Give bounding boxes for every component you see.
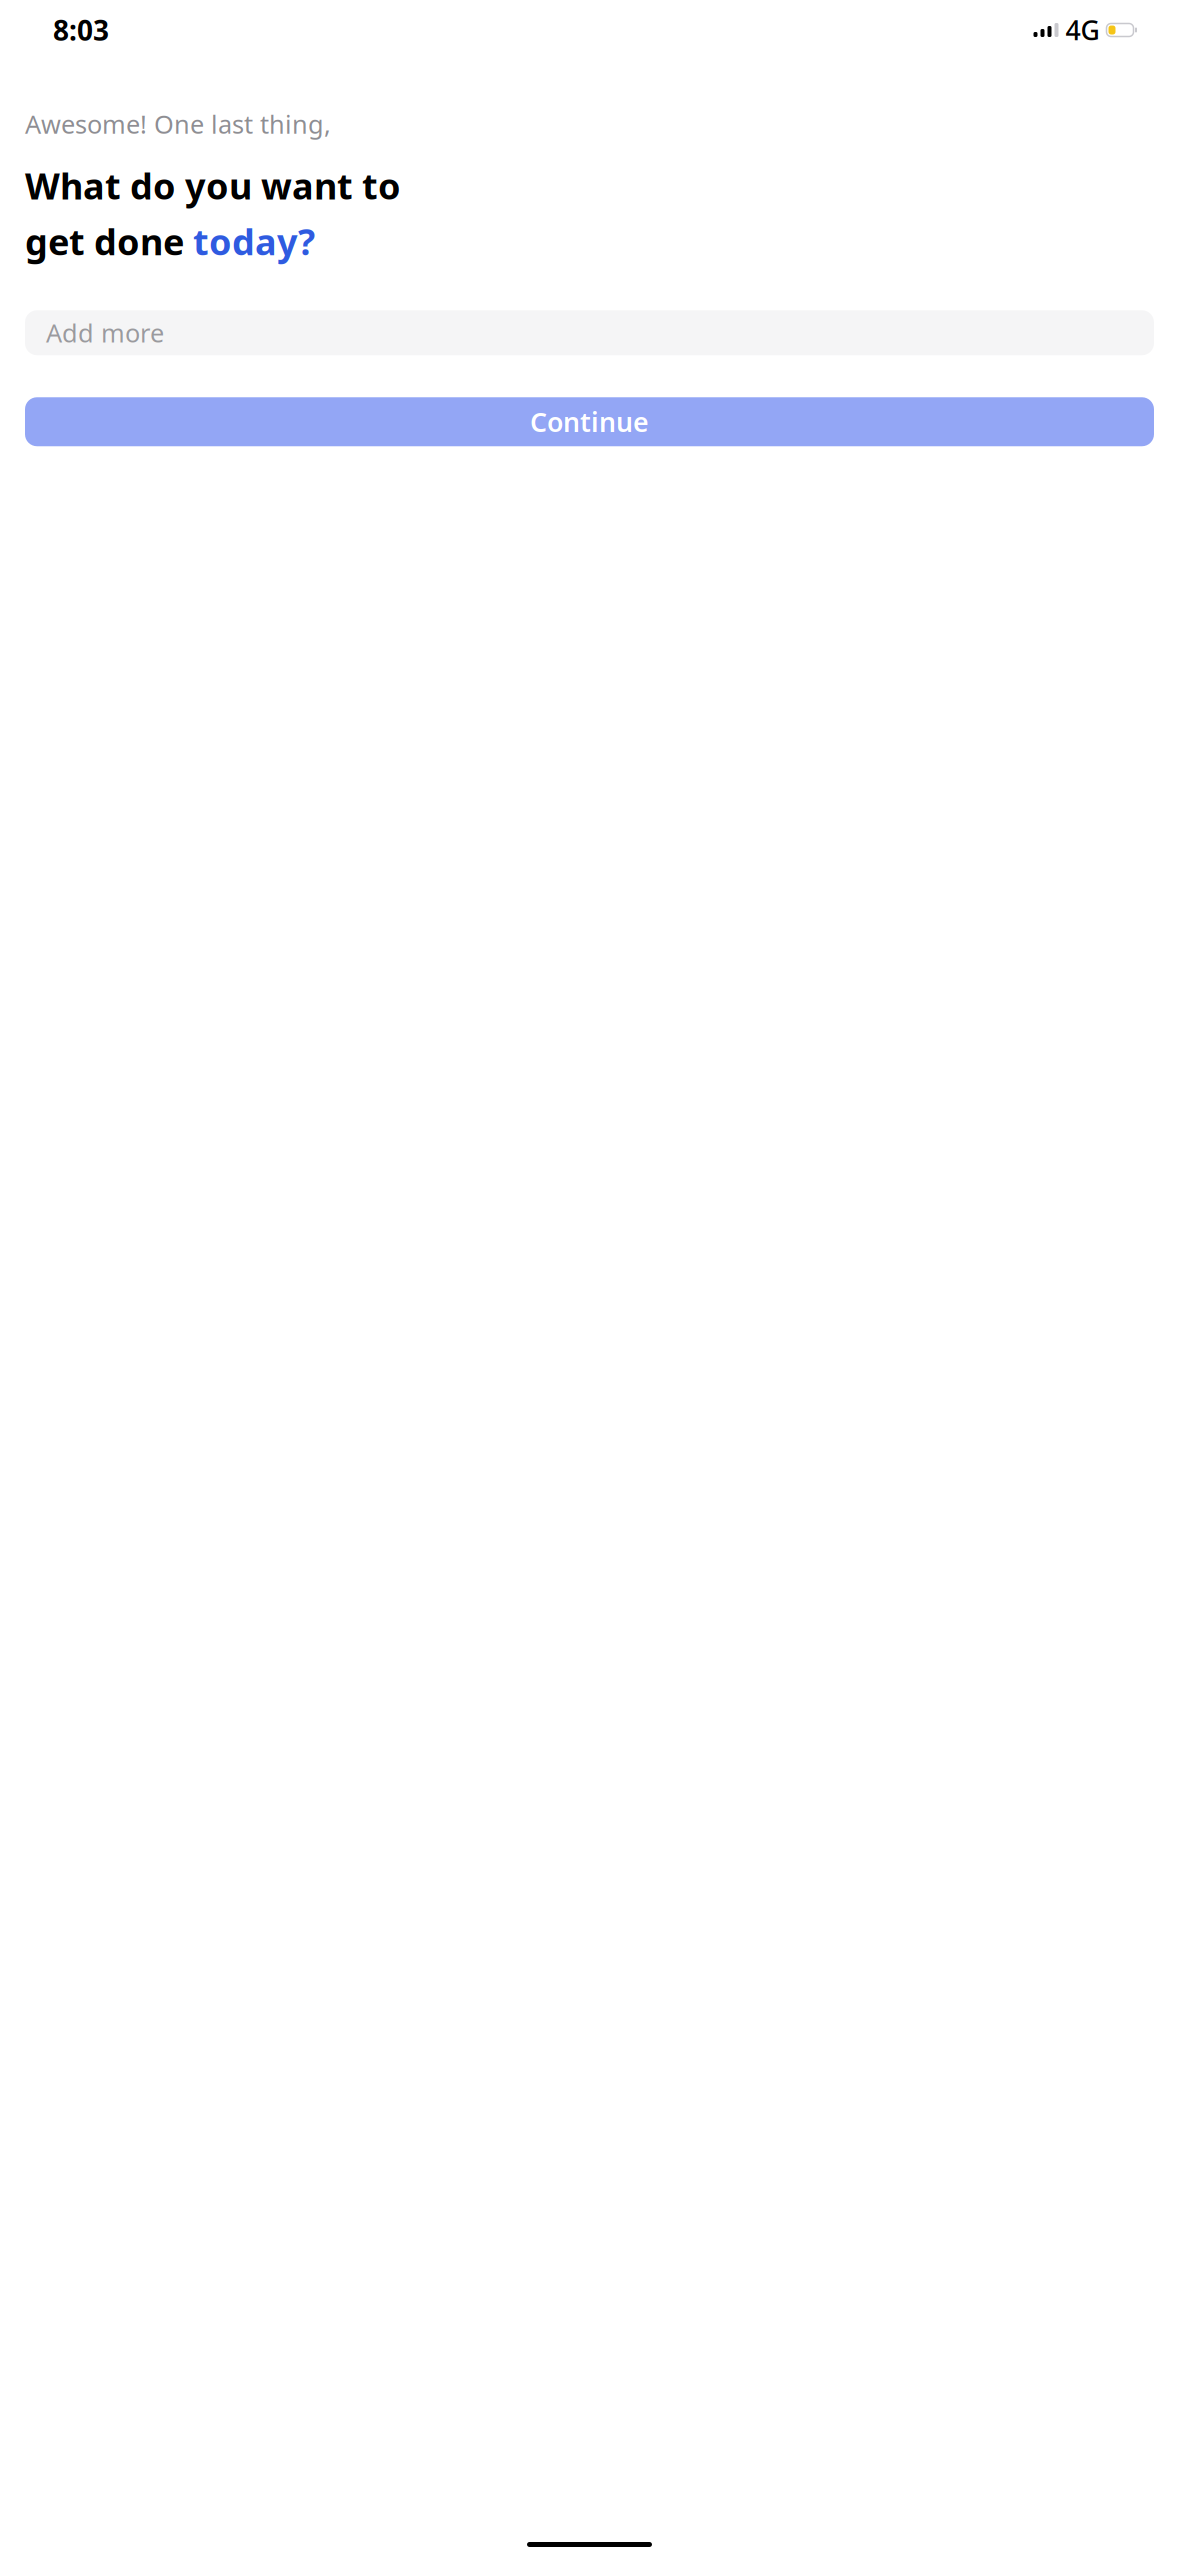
staticText: 8:03 [53, 11, 109, 49]
staticText: get done [25, 217, 193, 265]
staticText: What do you want to [25, 162, 401, 209]
staticText: today? [193, 217, 315, 265]
staticText: Awesome! One last thing, [25, 107, 331, 141]
button[interactable]: Add more [25, 310, 1154, 355]
staticText: Continue [530, 404, 649, 439]
staticText: Add more [46, 316, 164, 349]
button[interactable]: Continue [25, 397, 1154, 446]
staticText: 4G [1065, 12, 1099, 48]
